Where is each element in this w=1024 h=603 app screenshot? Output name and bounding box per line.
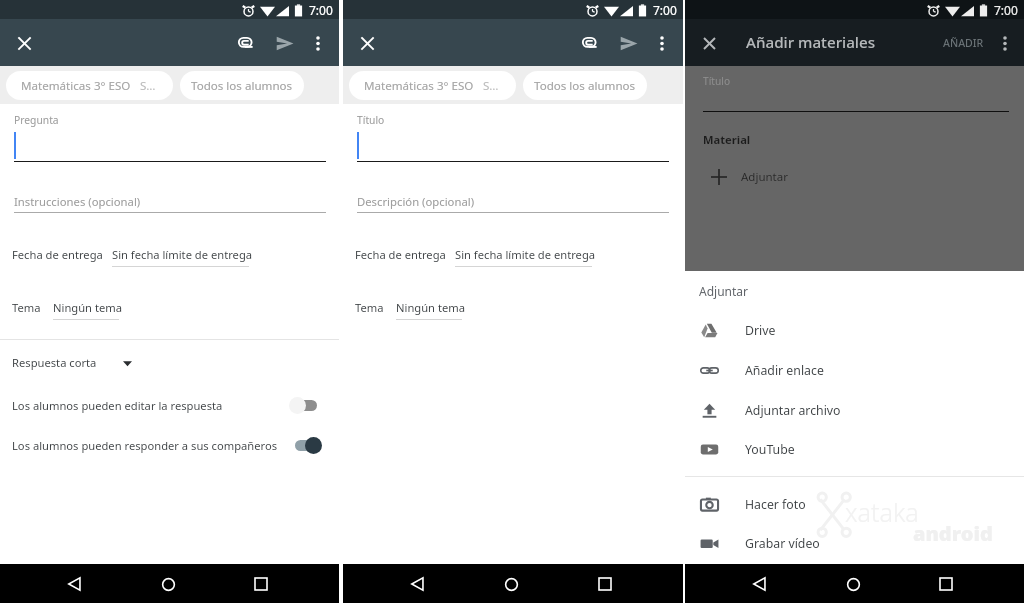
staticText: Fecha de entrega: [12, 247, 103, 262]
button[interactable]: Los alumnos pueden responder a sus compa…: [0, 431, 339, 459]
staticText: Drive: [745, 322, 776, 339]
staticText: Matemáticas 3° ESO: [21, 78, 131, 94]
staticText: Pregunta: [14, 113, 59, 127]
staticText: Material: [703, 132, 751, 147]
staticText: Ningún tema: [396, 300, 466, 315]
button[interactable]: Close: [9, 28, 39, 58]
button[interactable]: Respuesta corta: [12, 355, 132, 370]
staticText: Ningún tema: [53, 300, 123, 315]
button[interactable]: Matemáticas 3° ESO: [349, 71, 516, 100]
staticText: Todos los alumnos: [191, 78, 293, 94]
button[interactable]: YouTube: [685, 429, 1024, 469]
staticText: YouTube: [745, 441, 795, 458]
staticText: Tema: [355, 300, 384, 315]
staticText: Título: [357, 113, 385, 127]
button[interactable]: More options: [990, 28, 1020, 58]
button[interactable]: More options: [647, 28, 677, 58]
staticText: Adjuntar: [699, 283, 748, 299]
staticText: Matemáticas 3° ESO: [364, 78, 474, 94]
staticText: S…: [140, 78, 156, 94]
button[interactable]: Attach: [569, 22, 611, 64]
staticText: 7:00: [309, 2, 333, 18]
button[interactable]: Home: [495, 568, 527, 600]
button[interactable]: Los alumnos pueden editar la respuesta: [0, 391, 339, 419]
button[interactable]: Hacer foto: [685, 484, 1024, 524]
staticText: Instrucciones (opcional): [14, 194, 141, 209]
staticText: Grabar vídeo: [745, 535, 820, 552]
button[interactable]: Send: [267, 25, 303, 61]
staticText: AÑADIR: [943, 36, 984, 50]
button[interactable]: Grabar vídeo: [685, 523, 1024, 563]
staticText: Tema: [12, 300, 41, 315]
staticText: android: [913, 520, 993, 547]
staticText: Los alumnos pueden responder a sus compa…: [12, 438, 289, 453]
button[interactable]: Adjuntar archivo: [685, 390, 1024, 430]
staticText: Título: [703, 74, 731, 88]
button[interactable]: Back: [58, 568, 90, 600]
staticText: Sin fecha límite de entrega: [455, 247, 596, 262]
button[interactable]: Send: [611, 25, 647, 61]
staticText: Respuesta corta: [12, 355, 97, 370]
button[interactable]: Recents: [930, 568, 962, 600]
staticText: 7:00: [994, 2, 1018, 18]
button[interactable]: Back: [743, 568, 775, 600]
staticText: Fecha de entrega: [355, 247, 446, 262]
button[interactable]: Matemáticas 3° ESO: [6, 71, 173, 100]
button[interactable]: Close: [694, 28, 724, 58]
staticText: Añadir materiales: [746, 32, 876, 53]
staticText: Sin fecha límite de entrega: [112, 247, 253, 262]
staticText: S…: [483, 78, 499, 94]
button[interactable]: Adjuntar: [685, 162, 1024, 192]
button[interactable]: Todos los alumnos: [523, 71, 647, 100]
button[interactable]: Home: [152, 568, 184, 600]
button[interactable]: Drive: [685, 310, 1024, 350]
button[interactable]: Close: [352, 28, 382, 58]
button[interactable]: AÑADIR: [937, 36, 990, 50]
staticText: Descripción (opcional): [357, 194, 475, 209]
button[interactable]: Back: [401, 568, 433, 600]
staticText: Todos los alumnos: [534, 78, 636, 94]
staticText: Hacer foto: [745, 496, 806, 513]
button[interactable]: Home: [837, 568, 869, 600]
staticText: 7:00: [653, 2, 677, 18]
button[interactable]: Añadir enlace: [685, 350, 1024, 390]
button[interactable]: Attach: [225, 22, 267, 64]
staticText: xataka: [845, 495, 919, 529]
staticText: Añadir enlace: [745, 362, 824, 379]
button[interactable]: Recents: [589, 568, 621, 600]
staticText: Los alumnos pueden editar la respuesta: [12, 398, 289, 413]
staticText: Adjuntar: [741, 169, 788, 185]
staticText: Adjuntar archivo: [745, 402, 841, 419]
button[interactable]: Recents: [245, 568, 277, 600]
button[interactable]: Todos los alumnos: [180, 71, 304, 100]
button[interactable]: More options: [303, 28, 333, 58]
